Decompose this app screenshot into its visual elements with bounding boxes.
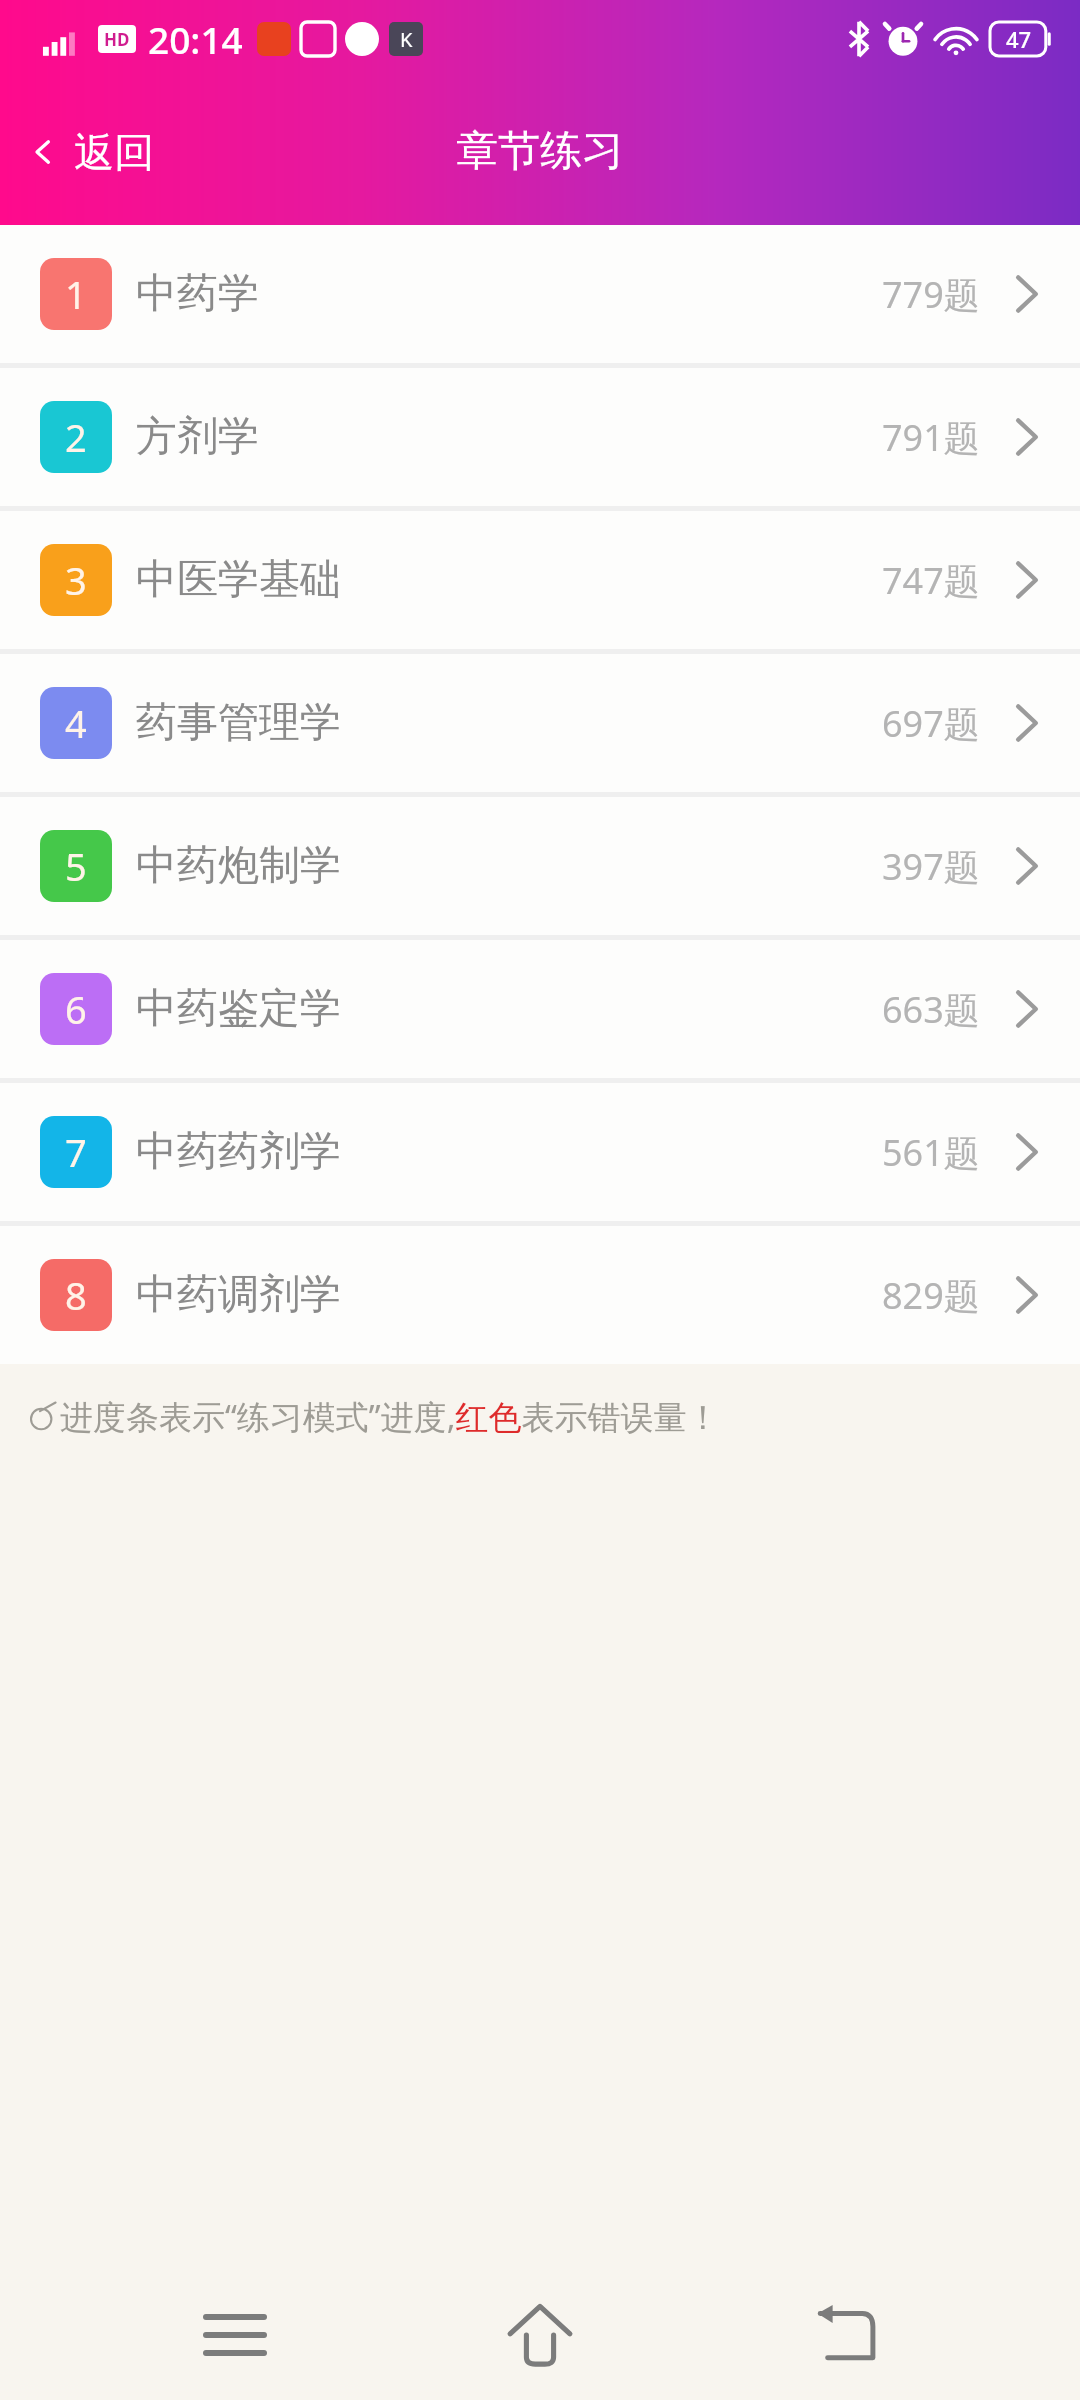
staticText: 561题 — [882, 1128, 980, 1177]
staticText: 4 — [65, 697, 87, 749]
staticText: K — [400, 26, 413, 53]
button[interactable]: 5 — [0, 797, 1080, 935]
button[interactable]: 2 — [0, 368, 1080, 506]
staticText: 6 — [65, 983, 87, 1035]
button[interactable]: 6 — [0, 940, 1080, 1078]
staticText: 1 — [65, 268, 87, 320]
staticText: 697题 — [882, 699, 980, 748]
staticText: 791题 — [882, 413, 980, 462]
staticText: 章节练习 — [456, 125, 624, 178]
button[interactable]: 返回 — [0, 117, 178, 187]
staticText: 中药炮制学 — [136, 840, 341, 892]
button[interactable]: 4 — [0, 654, 1080, 792]
staticText: 663题 — [882, 985, 980, 1034]
staticText: 药事管理学 — [136, 697, 341, 749]
staticText: 397题 — [882, 842, 980, 891]
staticText: 779题 — [882, 270, 980, 319]
staticText: 进度条表示“练习模式”进度,红色表示错误量！ — [60, 1394, 720, 1439]
staticText: HD — [104, 28, 130, 51]
staticText: 5 — [65, 840, 87, 892]
staticText: 747题 — [882, 556, 980, 605]
button[interactable]: Home — [470, 2270, 610, 2400]
staticText: 返回 — [74, 127, 154, 177]
staticText: 中药鉴定学 — [136, 983, 341, 1035]
button[interactable]: 3 — [0, 511, 1080, 649]
staticText: 方剂学 — [136, 411, 259, 463]
button[interactable]: Recent apps — [165, 2270, 305, 2400]
button[interactable]: 1 — [0, 225, 1080, 363]
button[interactable]: 8 — [0, 1226, 1080, 1364]
staticText: 中药调剂学 — [136, 1269, 341, 1321]
staticText: 829题 — [882, 1271, 980, 1320]
button[interactable]: Back — [775, 2270, 915, 2400]
button[interactable]: 7 — [0, 1083, 1080, 1221]
staticText: 中药药剂学 — [136, 1126, 341, 1178]
staticText: 3 — [65, 554, 87, 606]
staticText: 20:14 — [148, 14, 243, 64]
staticText: 7 — [65, 1126, 87, 1178]
staticText: 47 — [1006, 24, 1032, 54]
staticText: 2 — [65, 411, 87, 463]
staticText: 中医学基础 — [136, 554, 341, 606]
staticText: 8 — [65, 1269, 87, 1321]
staticText: 中药学 — [136, 268, 259, 320]
